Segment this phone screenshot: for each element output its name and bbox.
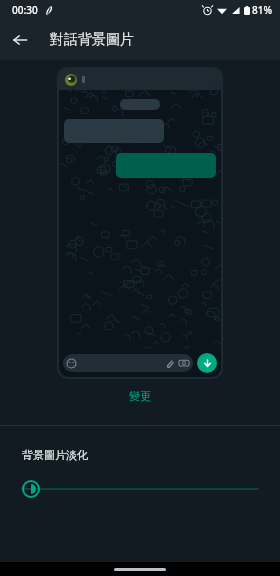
- staticText: 背景圖片淡化: [22, 448, 88, 462]
- button[interactable]: [0, 475, 280, 503]
- staticText: 變更: [129, 389, 151, 403]
- button[interactable]: Download wallpaper: [197, 353, 217, 373]
- button[interactable]: 變更: [113, 386, 167, 406]
- staticText: 對話背景圖片: [50, 31, 134, 49]
- button[interactable]: Back: [0, 20, 40, 60]
- staticText: 81%: [252, 3, 272, 17]
- staticText: 00:30: [12, 3, 38, 17]
